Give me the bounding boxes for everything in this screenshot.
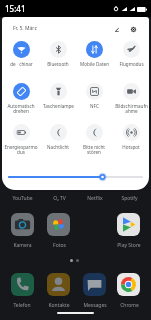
button[interactable] xyxy=(47,273,70,296)
staticText: Bildschirmaufn ahme xyxy=(115,103,148,115)
button[interactable] xyxy=(83,166,106,189)
staticText: Flugmodus xyxy=(119,61,144,67)
staticText: Bitte nicht stören xyxy=(83,144,105,156)
staticText: Automatisch drehen xyxy=(7,103,35,115)
staticText: Bluetooth xyxy=(47,61,69,67)
staticText: Kontakte xyxy=(48,302,70,309)
button[interactable] xyxy=(83,273,106,296)
button[interactable] xyxy=(11,273,34,296)
staticText: Energiesparmo dus xyxy=(4,144,38,156)
button[interactable] xyxy=(113,41,149,67)
button[interactable] xyxy=(3,124,39,150)
button[interactable] xyxy=(76,83,112,109)
button[interactable]: Einstellungen xyxy=(127,23,140,36)
button[interactable]: Helligkeit xyxy=(8,173,143,181)
staticText: Netflix xyxy=(87,195,103,202)
staticText: Fotos xyxy=(53,242,66,249)
staticText: Play Store xyxy=(117,242,141,249)
button[interactable] xyxy=(113,83,149,109)
button[interactable] xyxy=(117,166,140,189)
button[interactable] xyxy=(76,124,112,150)
staticText: Fr, 5. März xyxy=(13,25,37,32)
staticText: 15:41 xyxy=(5,3,26,14)
button[interactable] xyxy=(76,41,112,67)
staticText: Chrome xyxy=(120,302,139,309)
button[interactable] xyxy=(11,213,34,236)
button[interactable] xyxy=(47,213,70,236)
button[interactable] xyxy=(47,166,70,189)
button[interactable] xyxy=(117,213,140,236)
button[interactable] xyxy=(11,166,34,189)
staticText: Messages xyxy=(83,302,107,309)
staticText: Telefon xyxy=(13,302,31,309)
button[interactable] xyxy=(117,273,140,296)
button[interactable] xyxy=(40,41,76,67)
staticText: Mobile Daten xyxy=(80,61,109,67)
staticText: Nachtlicht xyxy=(47,144,69,150)
button[interactable] xyxy=(3,41,39,67)
button[interactable] xyxy=(40,83,76,109)
staticText: YouTube xyxy=(12,195,33,202)
button[interactable] xyxy=(40,124,76,150)
staticText: Taschenlampe xyxy=(43,103,74,109)
staticText: Spotify xyxy=(121,195,138,202)
staticText: de chinar xyxy=(10,61,33,67)
button[interactable] xyxy=(3,83,39,109)
staticText: O₂ TV xyxy=(53,195,66,202)
button[interactable]: Bearbeiten xyxy=(110,23,123,36)
staticText: Hotspot xyxy=(122,144,140,150)
staticText: Kamera xyxy=(13,242,32,249)
button[interactable] xyxy=(113,124,149,150)
staticText: NFC xyxy=(90,103,99,109)
